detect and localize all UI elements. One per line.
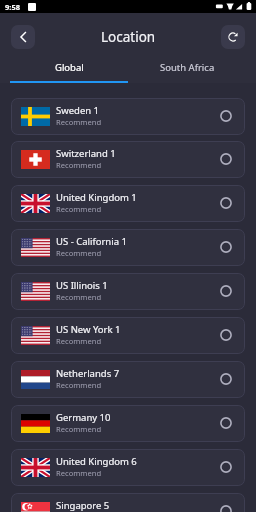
button[interactable]: United Kingdom 1 (11, 185, 245, 222)
staticText: Recommend (56, 380, 102, 390)
staticText: US Illinois 1 (56, 279, 108, 292)
staticText: Recommend (56, 117, 102, 127)
button[interactable]: Germany 10 (11, 405, 245, 442)
staticText: Recommend (56, 160, 102, 170)
staticText: Recommend (56, 248, 102, 258)
staticText: Recommend (56, 468, 102, 478)
button[interactable]: US Illinois 1 (11, 273, 245, 310)
button[interactable]: Refresh (221, 25, 245, 49)
staticText: South Africa (160, 61, 215, 74)
button[interactable]: United Kingdom 6 (11, 449, 245, 486)
staticText: US - California 1 (56, 235, 127, 248)
staticText: United Kingdom 1 (56, 191, 137, 204)
button[interactable]: US New York 1 (11, 317, 245, 354)
staticText: US New York 1 (56, 323, 121, 336)
staticText: Sweden 1 (56, 104, 100, 117)
staticText: United Kingdom 6 (56, 455, 137, 468)
button[interactable]: Global (10, 60, 128, 83)
staticText: Global (55, 61, 84, 74)
button[interactable]: Sweden 1 (11, 98, 245, 135)
button[interactable]: Back (11, 25, 35, 49)
button[interactable]: Switzerland 1 (11, 141, 245, 178)
staticText: Netherlands 7 (56, 367, 120, 380)
staticText: Recommend (56, 336, 102, 346)
button[interactable]: South Africa (128, 60, 246, 83)
staticText: Recommend (56, 292, 102, 302)
staticText: Recommend (56, 204, 102, 214)
staticText: Germany 10 (56, 411, 111, 424)
staticText: Switzerland 1 (56, 147, 116, 160)
button[interactable]: US - California 1 (11, 229, 245, 266)
button[interactable]: Singapore 5 (11, 493, 245, 512)
staticText: Recommend (56, 424, 102, 434)
staticText: 9:58 (5, 2, 20, 12)
staticText: Singapore 5 (56, 499, 110, 512)
button[interactable]: Netherlands 7 (11, 361, 245, 398)
staticText: Location (101, 28, 156, 46)
